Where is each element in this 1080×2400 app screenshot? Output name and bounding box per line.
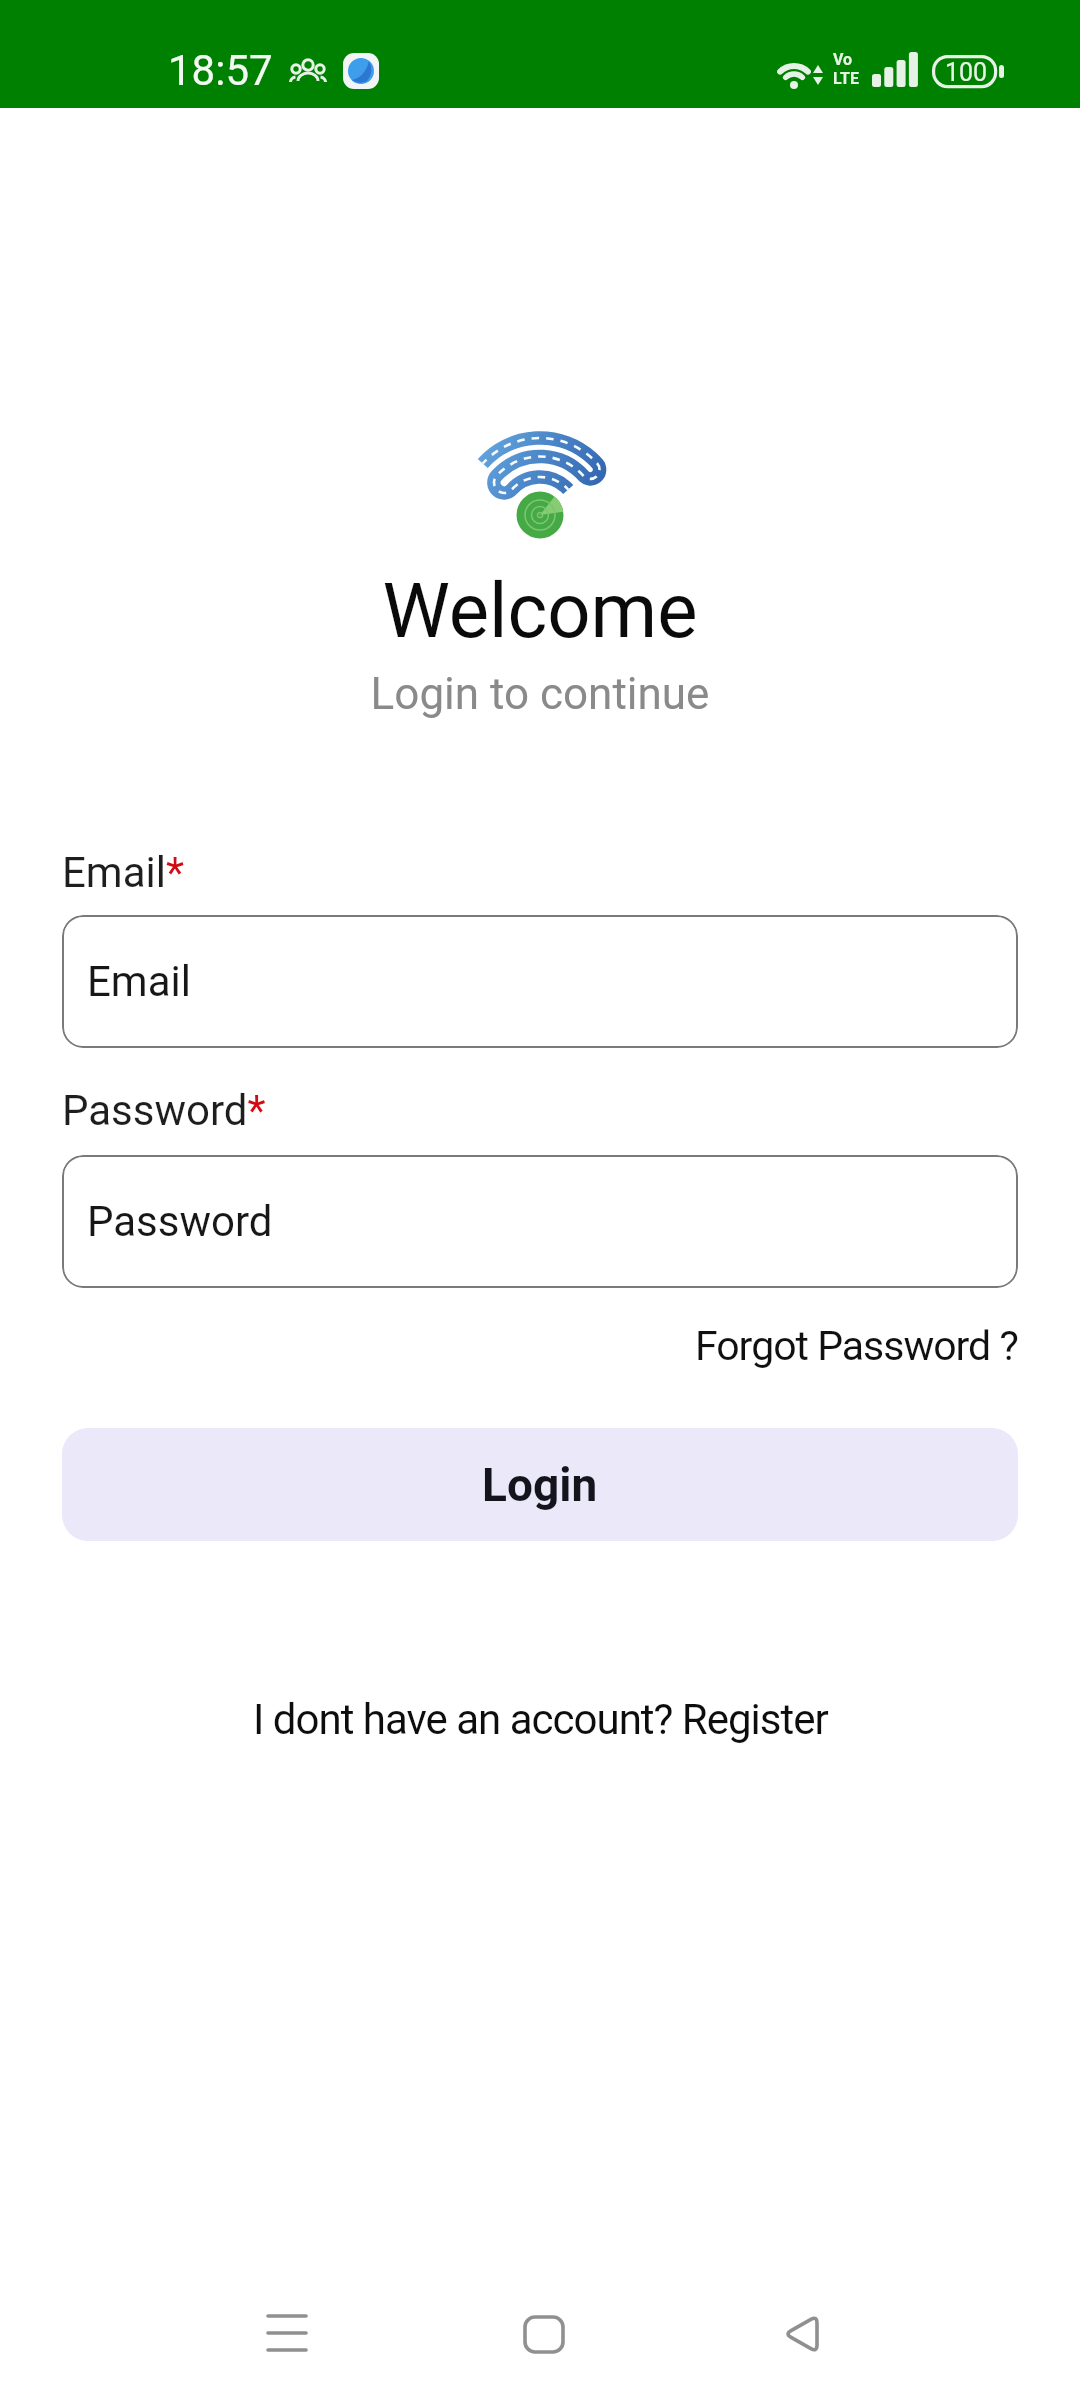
button[interactable]: Email xyxy=(62,915,1018,1048)
button[interactable] xyxy=(514,2304,574,2364)
button[interactable]: Login xyxy=(62,1428,1018,1541)
button[interactable]: Password xyxy=(62,1155,1018,1288)
staticText: Vo xyxy=(833,50,853,69)
staticText: Email* xyxy=(62,848,185,897)
button[interactable]: I dont have an account? Register xyxy=(253,1695,828,1744)
staticText: 18:57 xyxy=(168,46,273,95)
staticText: 100 xyxy=(945,58,988,87)
staticText: Password xyxy=(87,1197,273,1246)
staticText: Welcome xyxy=(0,566,1080,655)
button[interactable] xyxy=(771,2303,831,2363)
staticText: I dont have an account? Register xyxy=(253,1695,828,1744)
staticText: Login xyxy=(482,1458,598,1512)
staticText: Login to continue xyxy=(0,668,1080,720)
staticText: LTE xyxy=(833,69,859,88)
staticText: Forgot Password ? xyxy=(695,1322,1018,1370)
staticText: Password* xyxy=(62,1086,266,1135)
button[interactable] xyxy=(257,2303,317,2363)
staticText: Email xyxy=(87,957,191,1006)
button[interactable]: Forgot Password ? xyxy=(695,1322,1018,1370)
